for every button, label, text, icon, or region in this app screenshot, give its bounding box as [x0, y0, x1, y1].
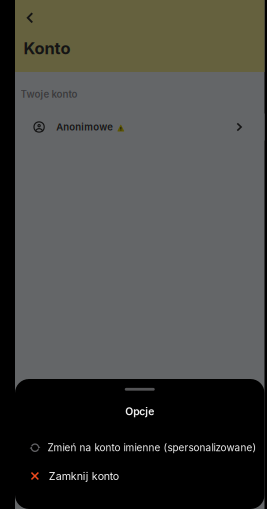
button[interactable]: Anonimowe [15, 113, 264, 140]
staticText: Opcje [125, 405, 154, 418]
staticText: Zamknij konto [49, 469, 119, 482]
button[interactable]: Zamknij konto [15, 464, 264, 488]
staticText: Anonimowe [56, 121, 113, 133]
staticText: Konto [23, 38, 70, 58]
staticText: Twoje konto [20, 88, 77, 100]
button[interactable]: Back [17, 6, 43, 30]
button[interactable]: Zmień na konto imienne (spersonalizowane… [15, 436, 264, 460]
staticText: Zmień na konto imienne (spersonalizowane… [48, 442, 257, 454]
